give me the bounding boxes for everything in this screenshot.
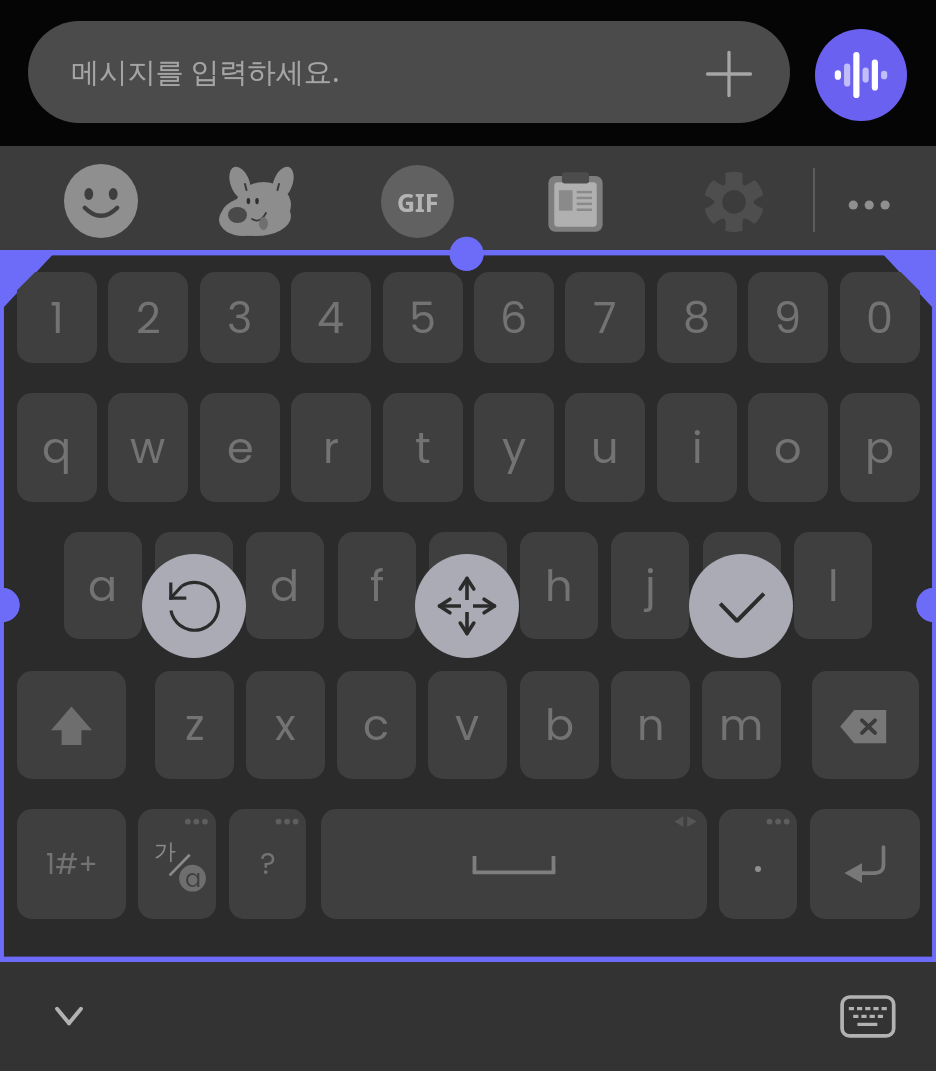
button[interactable]: m xyxy=(702,671,781,779)
button[interactable]: 8 xyxy=(657,272,737,363)
staticText: 8 xyxy=(683,288,711,348)
button[interactable]: Shift xyxy=(17,671,126,779)
staticText: 7 xyxy=(593,288,617,348)
staticText: 9 xyxy=(774,288,802,348)
staticText: n xyxy=(637,695,665,755)
button[interactable]: l xyxy=(794,532,872,639)
staticText: d xyxy=(270,556,300,616)
button[interactable]: t xyxy=(383,393,463,502)
staticText: a xyxy=(88,556,118,616)
staticText: 3 xyxy=(227,288,253,348)
staticText: i xyxy=(692,418,703,478)
button[interactable]: Add attachment xyxy=(701,46,757,102)
staticText: q xyxy=(42,418,72,478)
staticText: x xyxy=(275,695,296,755)
button[interactable]: f xyxy=(338,532,416,639)
button[interactable]: Stickers xyxy=(215,160,305,242)
staticText: e xyxy=(227,418,254,478)
staticText: y xyxy=(502,418,527,478)
staticText: 6 xyxy=(500,288,528,348)
staticText: 0 xyxy=(866,288,894,348)
button[interactable]: v xyxy=(428,671,507,779)
button[interactable]: s xyxy=(155,532,233,639)
staticText: GIF xyxy=(397,185,439,219)
button[interactable]: Hide keyboard xyxy=(39,986,99,1046)
staticText: s xyxy=(183,556,206,616)
button[interactable]: e xyxy=(200,393,280,502)
staticText: g xyxy=(453,556,483,616)
button[interactable]: Undo xyxy=(142,554,246,658)
button[interactable]: c xyxy=(337,671,416,779)
staticText: u xyxy=(591,418,619,478)
button[interactable]: 5 xyxy=(383,272,463,363)
button[interactable]: 4 xyxy=(291,272,371,363)
staticText: r xyxy=(323,418,340,478)
button[interactable]: Switch keyboard xyxy=(836,991,900,1042)
staticText: k xyxy=(731,556,754,616)
staticText: 1 xyxy=(50,288,64,348)
staticText: v xyxy=(455,695,480,755)
button[interactable]: ? xyxy=(229,809,306,919)
button[interactable]: Backspace xyxy=(812,671,919,779)
staticText: o xyxy=(774,418,802,478)
button[interactable]: r xyxy=(291,393,371,502)
button[interactable]: q xyxy=(17,393,97,502)
staticText: ? xyxy=(260,843,276,885)
staticText: 2 xyxy=(136,288,161,348)
staticText: z xyxy=(185,695,205,755)
button[interactable]: 0 xyxy=(840,272,920,363)
button[interactable]: k xyxy=(703,532,781,639)
staticText: 메시지를 입력하세요. xyxy=(71,52,340,91)
button[interactable]: 메시지를 입력하세요. xyxy=(28,21,790,123)
button[interactable]: GIF xyxy=(381,165,454,238)
button[interactable]: 7 xyxy=(565,272,645,363)
button[interactable]: y xyxy=(474,393,554,502)
staticText: m xyxy=(719,695,764,755)
button[interactable]: Period xyxy=(719,809,797,919)
button[interactable]: j xyxy=(611,532,689,639)
button[interactable]: a xyxy=(64,532,142,639)
staticText: f xyxy=(370,556,385,616)
staticText: 4 xyxy=(317,288,345,348)
staticText: a xyxy=(185,862,202,896)
staticText: l xyxy=(828,556,839,616)
button[interactable]: x xyxy=(246,671,325,779)
staticText: 1#+ xyxy=(46,845,98,884)
staticText: b xyxy=(545,695,575,755)
button[interactable]: 6 xyxy=(474,272,554,363)
button[interactable]: 2 xyxy=(108,272,188,363)
button[interactable]: p xyxy=(840,393,920,502)
staticText: 가 xyxy=(154,838,176,866)
button[interactable]: Emoji xyxy=(64,164,138,238)
button[interactable]: Change language xyxy=(138,809,216,919)
button[interactable]: Move keyboard xyxy=(415,554,519,658)
button[interactable]: 1 xyxy=(17,272,97,363)
staticText: j xyxy=(645,556,656,616)
button[interactable]: o xyxy=(748,393,828,502)
staticText: 5 xyxy=(409,288,437,348)
button[interactable]: h xyxy=(520,532,598,639)
staticText: t xyxy=(415,418,431,478)
button[interactable]: Done xyxy=(689,554,793,658)
button[interactable]: n xyxy=(611,671,690,779)
button[interactable]: Enter xyxy=(810,809,920,919)
button[interactable]: Voice input xyxy=(815,29,907,121)
button[interactable]: z xyxy=(155,671,234,779)
button[interactable]: i xyxy=(657,393,737,502)
button[interactable]: 9 xyxy=(748,272,828,363)
staticText: w xyxy=(130,418,166,478)
staticText: c xyxy=(363,695,390,755)
button[interactable]: b xyxy=(520,671,599,779)
button[interactable]: d xyxy=(246,532,324,639)
button[interactable]: g xyxy=(429,532,507,639)
button[interactable]: Clipboard xyxy=(546,171,605,233)
button[interactable]: u xyxy=(565,393,645,502)
staticText: h xyxy=(545,556,573,616)
staticText: p xyxy=(865,418,895,478)
button[interactable]: Space xyxy=(321,809,707,919)
button[interactable]: w xyxy=(108,393,188,502)
button[interactable]: More options xyxy=(836,172,902,238)
button[interactable]: 1#+ xyxy=(17,809,126,919)
button[interactable]: Settings xyxy=(701,169,767,235)
button[interactable]: 3 xyxy=(200,272,280,363)
